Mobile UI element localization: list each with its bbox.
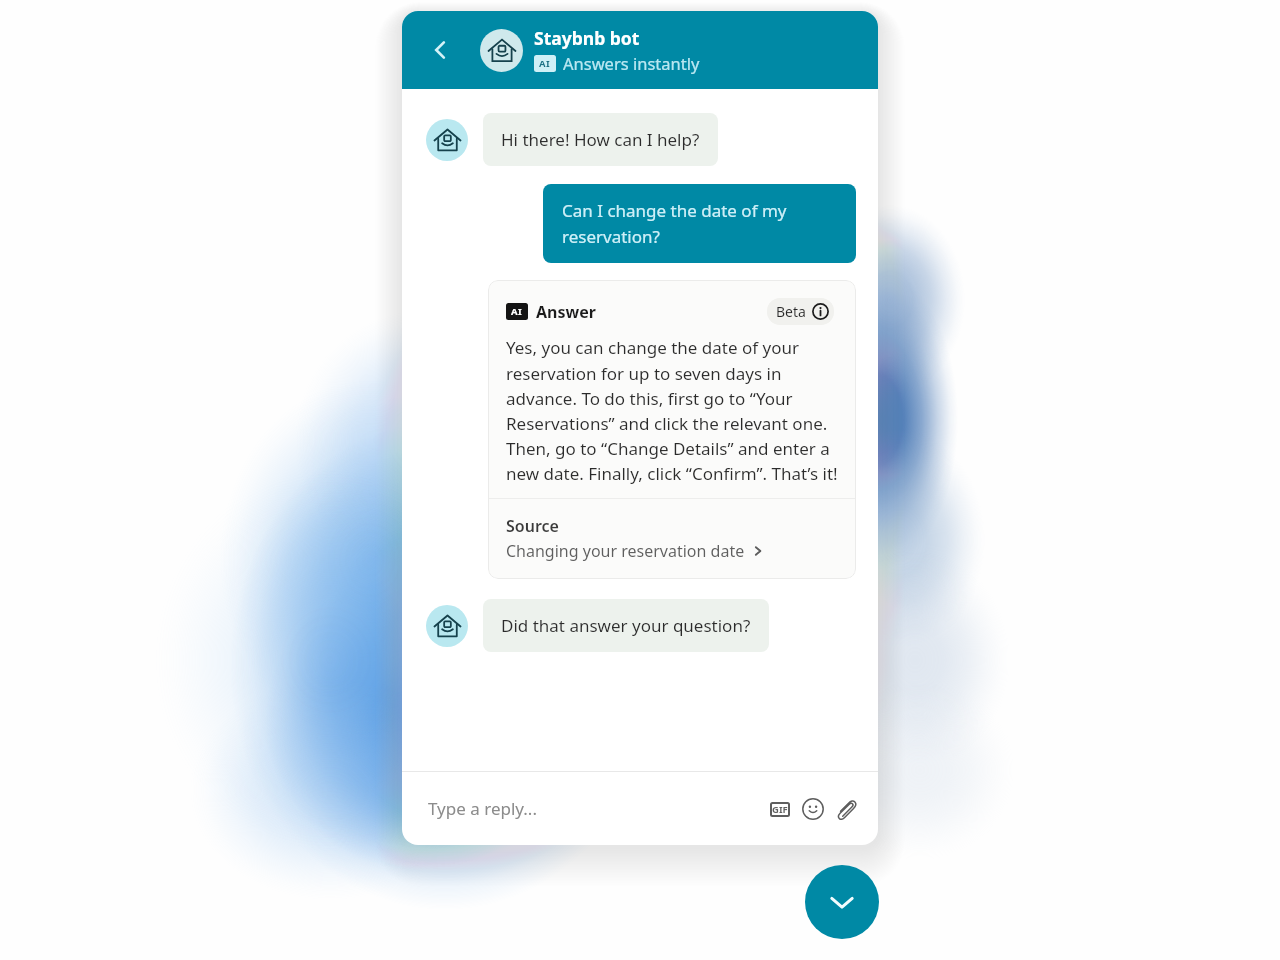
staticText: Can I change the date of my reservation? <box>562 199 837 248</box>
staticText: Answers instantly <box>563 52 700 74</box>
staticText: Yes, you can change the date of your res… <box>506 336 844 485</box>
button[interactable]: Minimize chat <box>805 865 879 939</box>
staticText: AI <box>539 57 551 70</box>
button[interactable]: Source <box>488 499 856 579</box>
staticText: Type a reply... <box>428 797 537 820</box>
button[interactable]: Beta <box>767 298 834 325</box>
button[interactable]: Back <box>424 33 458 67</box>
staticText: Answer <box>536 301 596 323</box>
staticText: Changing your reservation date <box>506 540 745 562</box>
button[interactable]: Attach file <box>832 795 860 823</box>
staticText: Staybnb bot <box>534 26 640 50</box>
staticText: Did that answer your question? <box>501 614 751 637</box>
staticText: GIF <box>772 803 788 816</box>
staticText: Source <box>506 515 559 537</box>
button[interactable]: Emoji <box>799 795 827 823</box>
staticText: Beta <box>776 302 806 321</box>
staticText: Hi there! How can I help? <box>501 128 700 151</box>
staticText: AI <box>511 305 523 318</box>
button[interactable]: Send a GIF <box>766 795 794 823</box>
